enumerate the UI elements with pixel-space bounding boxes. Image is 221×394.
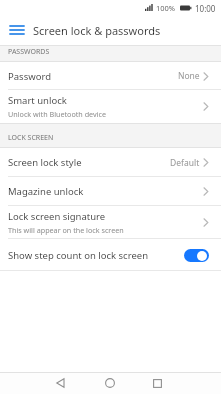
button[interactable]: [105, 378, 115, 388]
staticText: PASSWORDS: [8, 47, 50, 57]
button[interactable]: [153, 379, 162, 388]
staticText: 10:00: [195, 3, 216, 14]
button[interactable]: Lock screen signature: [0, 206, 221, 239]
staticText: Lock screen signature: [8, 210, 106, 223]
staticText: LOCK SCREEN: [8, 133, 54, 143]
button[interactable]: [56, 378, 65, 388]
button[interactable]: [10, 25, 24, 36]
staticText: 100%: [156, 3, 176, 13]
button[interactable]: Show step count on lock screen: [0, 239, 221, 271]
button[interactable]: Magazine unlock: [0, 177, 221, 206]
staticText: Show step count on lock screen: [8, 249, 149, 262]
staticText: Screen lock style: [8, 156, 82, 169]
staticText: This will appear on the lock screen: [8, 225, 124, 235]
staticText: Screen lock & passwords: [33, 23, 161, 38]
staticText: Smart unlock: [8, 94, 67, 107]
staticText: Magazine unlock: [8, 185, 84, 198]
staticText: Default: [170, 157, 200, 169]
staticText: Unlock with Bluetooth device: [8, 109, 107, 119]
button[interactable]: Screen lock style: [0, 148, 221, 177]
button[interactable]: [184, 249, 209, 262]
button[interactable]: Password: [0, 62, 221, 90]
staticText: None: [178, 70, 200, 82]
staticText: Password: [8, 70, 51, 83]
button[interactable]: Smart unlock: [0, 90, 221, 123]
